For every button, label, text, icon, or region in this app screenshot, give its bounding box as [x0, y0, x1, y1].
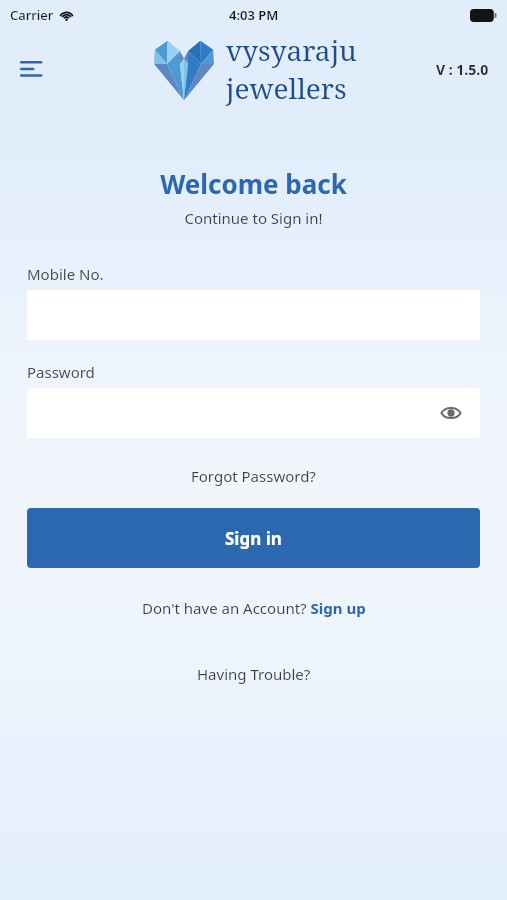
button[interactable]: Show password	[434, 396, 468, 430]
button[interactable]: Having Trouble?	[189, 660, 319, 688]
staticText: Don't have an Account? Sign up	[142, 598, 366, 618]
button[interactable]: Forgot Password?	[183, 462, 324, 490]
button[interactable]: Password input field	[27, 388, 480, 438]
staticText: jewellers	[226, 69, 347, 107]
staticText: V : 1.5.0	[436, 60, 489, 79]
staticText: Continue to Sign in!	[184, 208, 323, 228]
staticText: Carrier	[10, 6, 54, 24]
staticText: Forgot Password?	[191, 466, 316, 486]
staticText: vysyaraju	[226, 31, 357, 69]
staticText: Having Trouble?	[197, 664, 311, 684]
staticText: Welcome back	[160, 166, 347, 201]
staticText: Password	[27, 362, 95, 382]
button[interactable]: Sign in	[27, 508, 480, 568]
button[interactable]: Don't have an Account? Sign up	[134, 594, 374, 622]
staticText: 4:03 PM	[229, 6, 279, 24]
staticText: Mobile No.	[27, 264, 104, 284]
staticText: Sign in	[225, 527, 282, 550]
button[interactable]: Open navigation menu	[12, 47, 56, 91]
